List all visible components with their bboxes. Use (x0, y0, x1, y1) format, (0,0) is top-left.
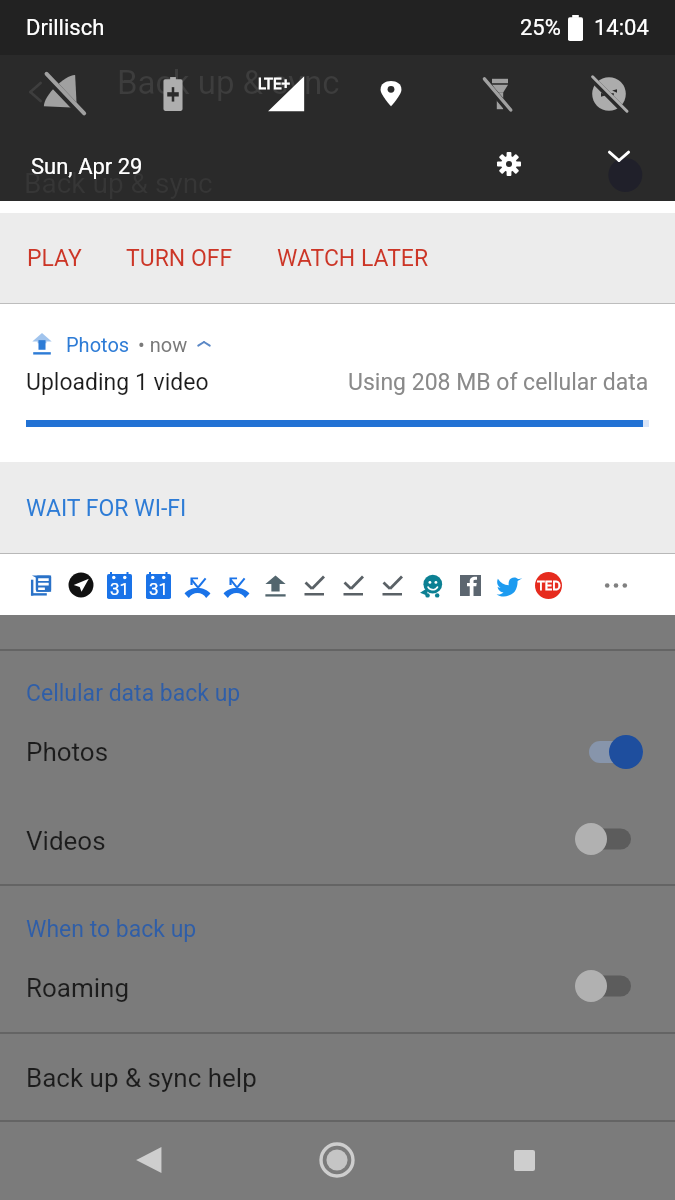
staticText: Cellular data back up (26, 680, 241, 707)
staticText: When to back up (26, 916, 197, 943)
staticText: • now (138, 333, 188, 356)
staticText: TURN OFF (126, 245, 233, 272)
button[interactable]: Videos (0, 806, 675, 876)
staticText: Back up & sync (117, 63, 340, 102)
button[interactable]: Location (336, 55, 445, 133)
button[interactable]: Wi-Fi off (8, 55, 118, 133)
staticText: Sun, Apr 29 (31, 154, 143, 180)
button[interactable]: Recent apps (485, 1121, 563, 1199)
staticText: Drillisch (26, 15, 105, 41)
button[interactable]: PLAY (5, 213, 104, 304)
staticText: Back up & sync help (26, 1063, 257, 1093)
button[interactable]: WAIT FOR WI-FI (0, 462, 675, 554)
button[interactable]: Home (298, 1121, 376, 1199)
staticText: Photos (26, 737, 109, 767)
staticText: TED (537, 578, 561, 593)
staticText: Uploading 1 video (26, 369, 209, 396)
staticText: Photos (66, 333, 130, 356)
button[interactable]: Expand quick settings (593, 134, 659, 200)
button[interactable]: WATCH LATER (255, 213, 451, 304)
staticText: Videos (26, 826, 106, 856)
staticText: 14:04 (594, 15, 649, 41)
button[interactable]: Auto-rotate off (554, 55, 663, 133)
staticText: Back up & sync (24, 167, 213, 200)
button[interactable]: Roaming (0, 953, 675, 1023)
staticText: WAIT FOR WI-FI (26, 495, 187, 522)
staticText: PLAY (27, 245, 82, 272)
staticText: 31 (110, 579, 130, 599)
staticText: Roaming (26, 973, 130, 1003)
staticText: Using 208 MB of cellular data (348, 369, 649, 396)
staticText: 25% (520, 15, 561, 41)
button[interactable]: Photos (0, 717, 675, 787)
staticText: LTE+ (258, 75, 291, 93)
button[interactable]: Flashlight off (445, 55, 554, 133)
button[interactable]: Back up & sync help (0, 1043, 675, 1113)
staticText: 31 (149, 579, 169, 599)
staticText: WATCH LATER (277, 245, 429, 272)
button[interactable]: More notifications (594, 563, 638, 607)
button[interactable]: TURN OFF (104, 213, 255, 304)
button[interactable]: Mobile data (227, 55, 336, 133)
button[interactable]: Settings (481, 136, 537, 192)
button[interactable]: Battery saver (118, 55, 227, 133)
button[interactable]: Back (111, 1121, 189, 1199)
